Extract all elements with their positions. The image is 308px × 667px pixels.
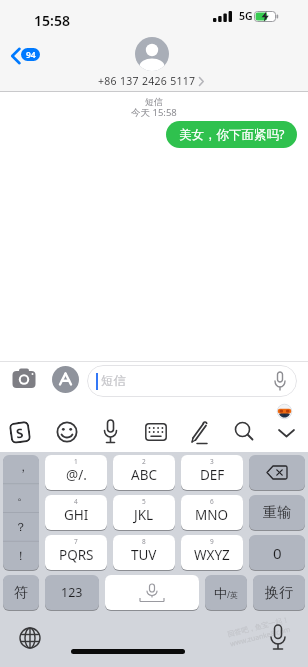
button[interactable] xyxy=(56,421,78,443)
button[interactable] xyxy=(189,420,210,445)
staticText: DEF xyxy=(200,466,225,484)
button[interactable] xyxy=(145,423,167,441)
staticText: 3 xyxy=(210,457,214,466)
staticText: ABC xyxy=(131,466,157,484)
staticText: 今天 15:58 xyxy=(131,106,177,119)
button[interactable] xyxy=(249,455,305,490)
staticText: PQRS xyxy=(59,546,94,564)
staticText: 中/英 xyxy=(214,585,238,601)
staticText: 0 xyxy=(273,543,282,563)
button[interactable]: 6 xyxy=(181,495,243,530)
button[interactable] xyxy=(135,37,169,71)
staticText: GHI xyxy=(64,506,89,524)
staticText: ， xyxy=(17,459,29,474)
button[interactable] xyxy=(277,404,292,419)
button[interactable]: ， xyxy=(3,455,39,570)
button[interactable] xyxy=(11,367,39,391)
staticText: 94 xyxy=(26,49,36,61)
staticText: 15:58 xyxy=(34,11,70,30)
button[interactable] xyxy=(11,48,21,64)
staticText: 换行 xyxy=(265,584,293,602)
staticText: 123 xyxy=(61,584,83,601)
staticText: MNO xyxy=(195,506,229,524)
staticText: TUV xyxy=(131,546,157,564)
button[interactable]: 4 xyxy=(45,495,107,530)
staticText: 短信 xyxy=(101,373,126,389)
button[interactable]: S xyxy=(6,418,33,446)
staticText: 7 xyxy=(74,537,78,546)
button[interactable]: 0 xyxy=(249,535,305,570)
staticText: 。 xyxy=(17,488,29,503)
button[interactable] xyxy=(277,427,296,440)
staticText: 6 xyxy=(210,497,214,506)
staticText: 短信 xyxy=(145,96,163,107)
button[interactable]: 美女，你下面紧吗? xyxy=(166,121,297,148)
button[interactable]: 换行 xyxy=(253,575,305,610)
button[interactable] xyxy=(268,624,288,652)
button[interactable] xyxy=(102,419,119,446)
button[interactable] xyxy=(19,627,41,649)
staticText: 重输 xyxy=(263,504,291,522)
staticText: 2 xyxy=(142,457,146,466)
button[interactable]: 5 xyxy=(113,495,175,530)
button[interactable]: 3 xyxy=(181,455,243,490)
button[interactable]: 94 xyxy=(21,48,40,61)
button[interactable]: 2 xyxy=(113,455,175,490)
staticText: 5G xyxy=(239,9,253,23)
staticText: 美女，你下面紧吗? xyxy=(179,126,285,143)
button[interactable]: 符 xyxy=(3,575,39,610)
staticText: WXYZ xyxy=(194,546,230,564)
staticText: +86 137 2426 5117 xyxy=(98,74,196,88)
staticText: JKL xyxy=(134,506,154,524)
button[interactable]: 8 xyxy=(113,535,175,570)
button[interactable] xyxy=(52,366,79,393)
staticText: @/. xyxy=(66,466,87,484)
button[interactable]: 123 xyxy=(45,575,99,610)
staticText: ？ xyxy=(15,519,27,534)
staticText: 4 xyxy=(74,497,78,506)
staticText: 9 xyxy=(210,537,214,546)
button[interactable]: 重输 xyxy=(249,495,305,530)
staticText: ！ xyxy=(15,548,27,563)
button[interactable]: 中/英 xyxy=(205,575,247,610)
button[interactable]: 1 xyxy=(45,455,107,490)
staticText: 回答吧，鱼宝一起！ www.zuanke8.com xyxy=(227,615,292,648)
staticText: 5 xyxy=(142,497,146,506)
button[interactable] xyxy=(234,421,254,443)
button[interactable]: 短信 xyxy=(87,365,297,397)
button[interactable]: +86 137 2426 5117 xyxy=(0,74,308,88)
staticText: 符 xyxy=(14,584,28,602)
staticText: S xyxy=(15,423,25,442)
button[interactable]: 9 xyxy=(181,535,243,570)
button[interactable] xyxy=(105,575,199,610)
staticText: 8 xyxy=(142,537,146,546)
button[interactable]: 7 xyxy=(45,535,107,570)
staticText: 1 xyxy=(74,457,78,466)
